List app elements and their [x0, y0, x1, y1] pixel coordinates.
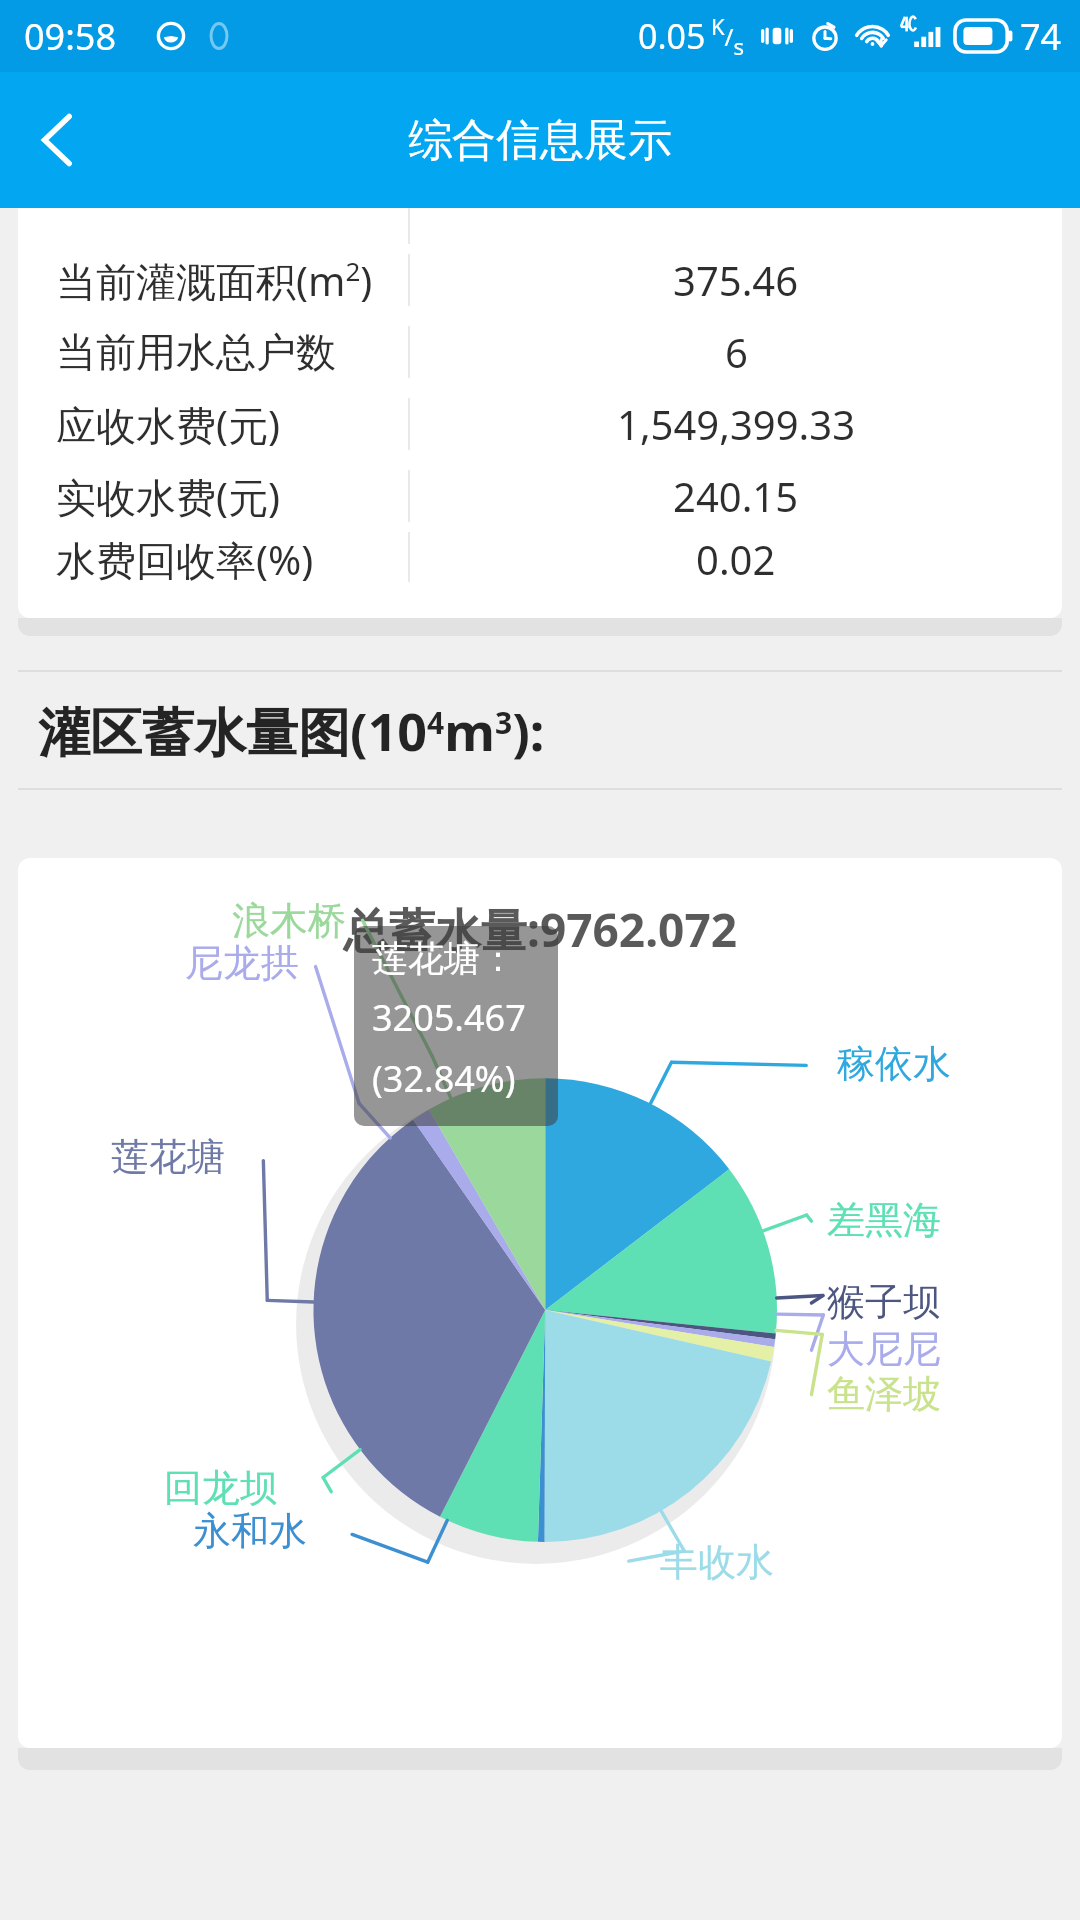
staticText: 当前灌溉面积(m2) — [56, 253, 373, 308]
staticText: 240.15 — [673, 469, 799, 523]
staticText: 丰收水 — [660, 1538, 774, 1586]
staticText: 稼依水 — [837, 1040, 951, 1088]
staticText: 实收水费(元) — [56, 469, 280, 524]
staticText: 回龙坝 — [164, 1464, 278, 1512]
button[interactable]: 实收水费(元) — [18, 460, 1062, 532]
staticText: 总蓄水量:9762.072 — [343, 898, 738, 961]
staticText: 当前用水总户数 — [56, 327, 336, 377]
staticText: 莲花塘 — [111, 1133, 225, 1181]
staticText: 水费回收率(%) — [56, 532, 314, 582]
staticText: 永和水 — [193, 1507, 307, 1555]
staticText: 09:58 — [24, 12, 117, 61]
staticText: 莲花塘： — [372, 936, 516, 981]
button[interactable]: 当前用水总户数 — [18, 316, 1062, 388]
button[interactable]: 当前灌溉面积(m2) — [18, 244, 1062, 316]
staticText: 0.05 — [638, 13, 706, 59]
staticText: 灌区蓄水量图(104m3): — [38, 695, 545, 766]
staticText: 综合信息展示 — [408, 113, 672, 168]
staticText: 大尼尼 — [827, 1325, 941, 1373]
staticText: 猴子坝 — [827, 1278, 941, 1326]
staticText: 6 — [725, 325, 748, 379]
button[interactable]: 返回 — [8, 90, 108, 190]
staticText: 375.46 — [673, 253, 799, 307]
staticText: 浪木桥 — [232, 897, 346, 945]
staticText: 应收水费(元) — [56, 397, 280, 452]
button[interactable]: 应收水费(元) — [18, 388, 1062, 460]
staticText: 尼龙拱 — [185, 939, 299, 987]
staticText: 差黑海 — [827, 1196, 941, 1244]
staticText: 74 — [1020, 12, 1062, 61]
button[interactable]: 水费回收率(%) — [18, 532, 1062, 582]
staticText: 3205.467 — [372, 993, 526, 1042]
staticText: 0.02 — [696, 532, 776, 582]
staticText: K/s — [711, 11, 745, 61]
staticText: (32.84%) — [372, 1054, 516, 1103]
staticText: 1,549,399.33 — [617, 397, 856, 451]
staticText: 鱼泽坡 — [827, 1370, 941, 1418]
